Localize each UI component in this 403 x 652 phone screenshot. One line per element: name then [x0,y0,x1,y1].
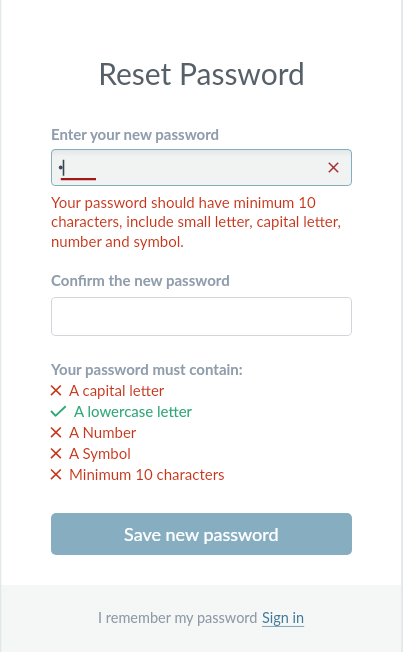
staticText: I remember my password [98,609,262,626]
staticText: Reset Password [51,55,352,91]
button[interactable]: Save new password [51,513,352,555]
staticText: A Number [69,423,137,441]
button[interactable]: Clear password [51,149,352,186]
button[interactable]: Sign in [262,609,305,626]
staticText: A Symbol [69,444,131,462]
staticText: Minimum 10 characters [69,465,225,483]
staticText: Your password should have minimum 10 cha… [51,193,352,251]
button[interactable] [51,297,352,336]
staticText: A lowercase letter [74,402,193,420]
staticText: Enter your new password [51,125,220,143]
staticText: Confirm the new password [51,271,230,289]
staticText: A capital letter [69,381,165,399]
button[interactable]: Clear password [328,162,339,173]
staticText: Your password must contain: [51,360,243,378]
staticText: Save new password [124,523,279,545]
staticText: Sign in [262,609,305,626]
